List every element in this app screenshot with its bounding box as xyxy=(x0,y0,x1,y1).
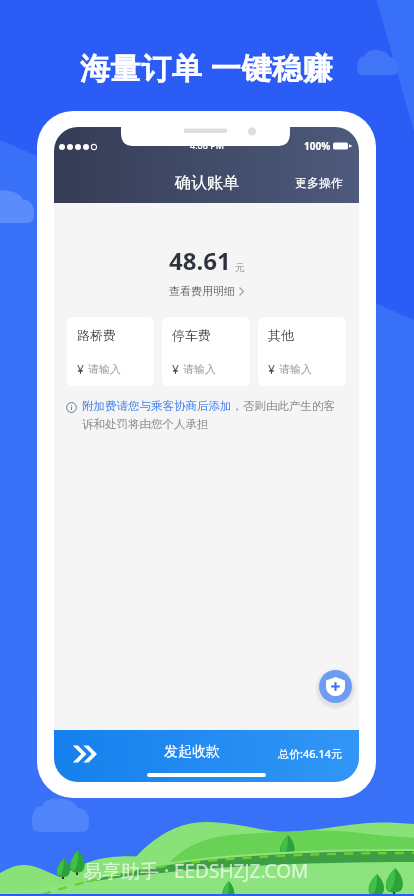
button[interactable]: 其他 xyxy=(258,317,346,386)
staticText: 请输入 xyxy=(183,362,216,376)
staticText: 发起收款 xyxy=(164,743,220,761)
button[interactable]: Add insurance xyxy=(319,670,352,703)
staticText: 请输入 xyxy=(88,362,121,376)
staticText: 48.61 xyxy=(169,244,231,277)
staticText: 易享助手 · EEDSHZJZ.COM xyxy=(83,858,309,884)
staticText: 附加费请您与乘客协商后添加，否则由此产生的客诉和处罚将由您个人承担 xyxy=(82,399,345,432)
button[interactable]: 更多操作 xyxy=(292,172,346,193)
staticText: ¥ xyxy=(268,361,275,377)
staticText: 确认账单 xyxy=(175,173,239,193)
staticText: 路桥费 xyxy=(77,327,116,343)
staticText: 其他 xyxy=(268,327,294,343)
staticText: 停车费 xyxy=(172,327,211,343)
button[interactable]: 停车费 xyxy=(162,317,250,386)
button[interactable]: 查看费用明细 xyxy=(167,282,246,300)
staticText: 元 xyxy=(235,261,245,274)
staticText: 总价:46.14元 xyxy=(278,746,343,761)
staticText: 更多操作 xyxy=(295,175,343,190)
staticText: 4:08 PM xyxy=(190,139,224,151)
staticText: 海量订单 一键稳赚 xyxy=(80,47,334,88)
staticText: ¥ xyxy=(172,361,179,377)
staticText: 请输入 xyxy=(279,362,312,376)
button[interactable]: Slide to start collection xyxy=(72,744,98,764)
staticText: ¥ xyxy=(77,361,84,377)
staticText: 100% xyxy=(304,139,331,153)
staticText: 查看费用明细 xyxy=(169,284,235,298)
button[interactable]: 路桥费 xyxy=(67,317,154,386)
